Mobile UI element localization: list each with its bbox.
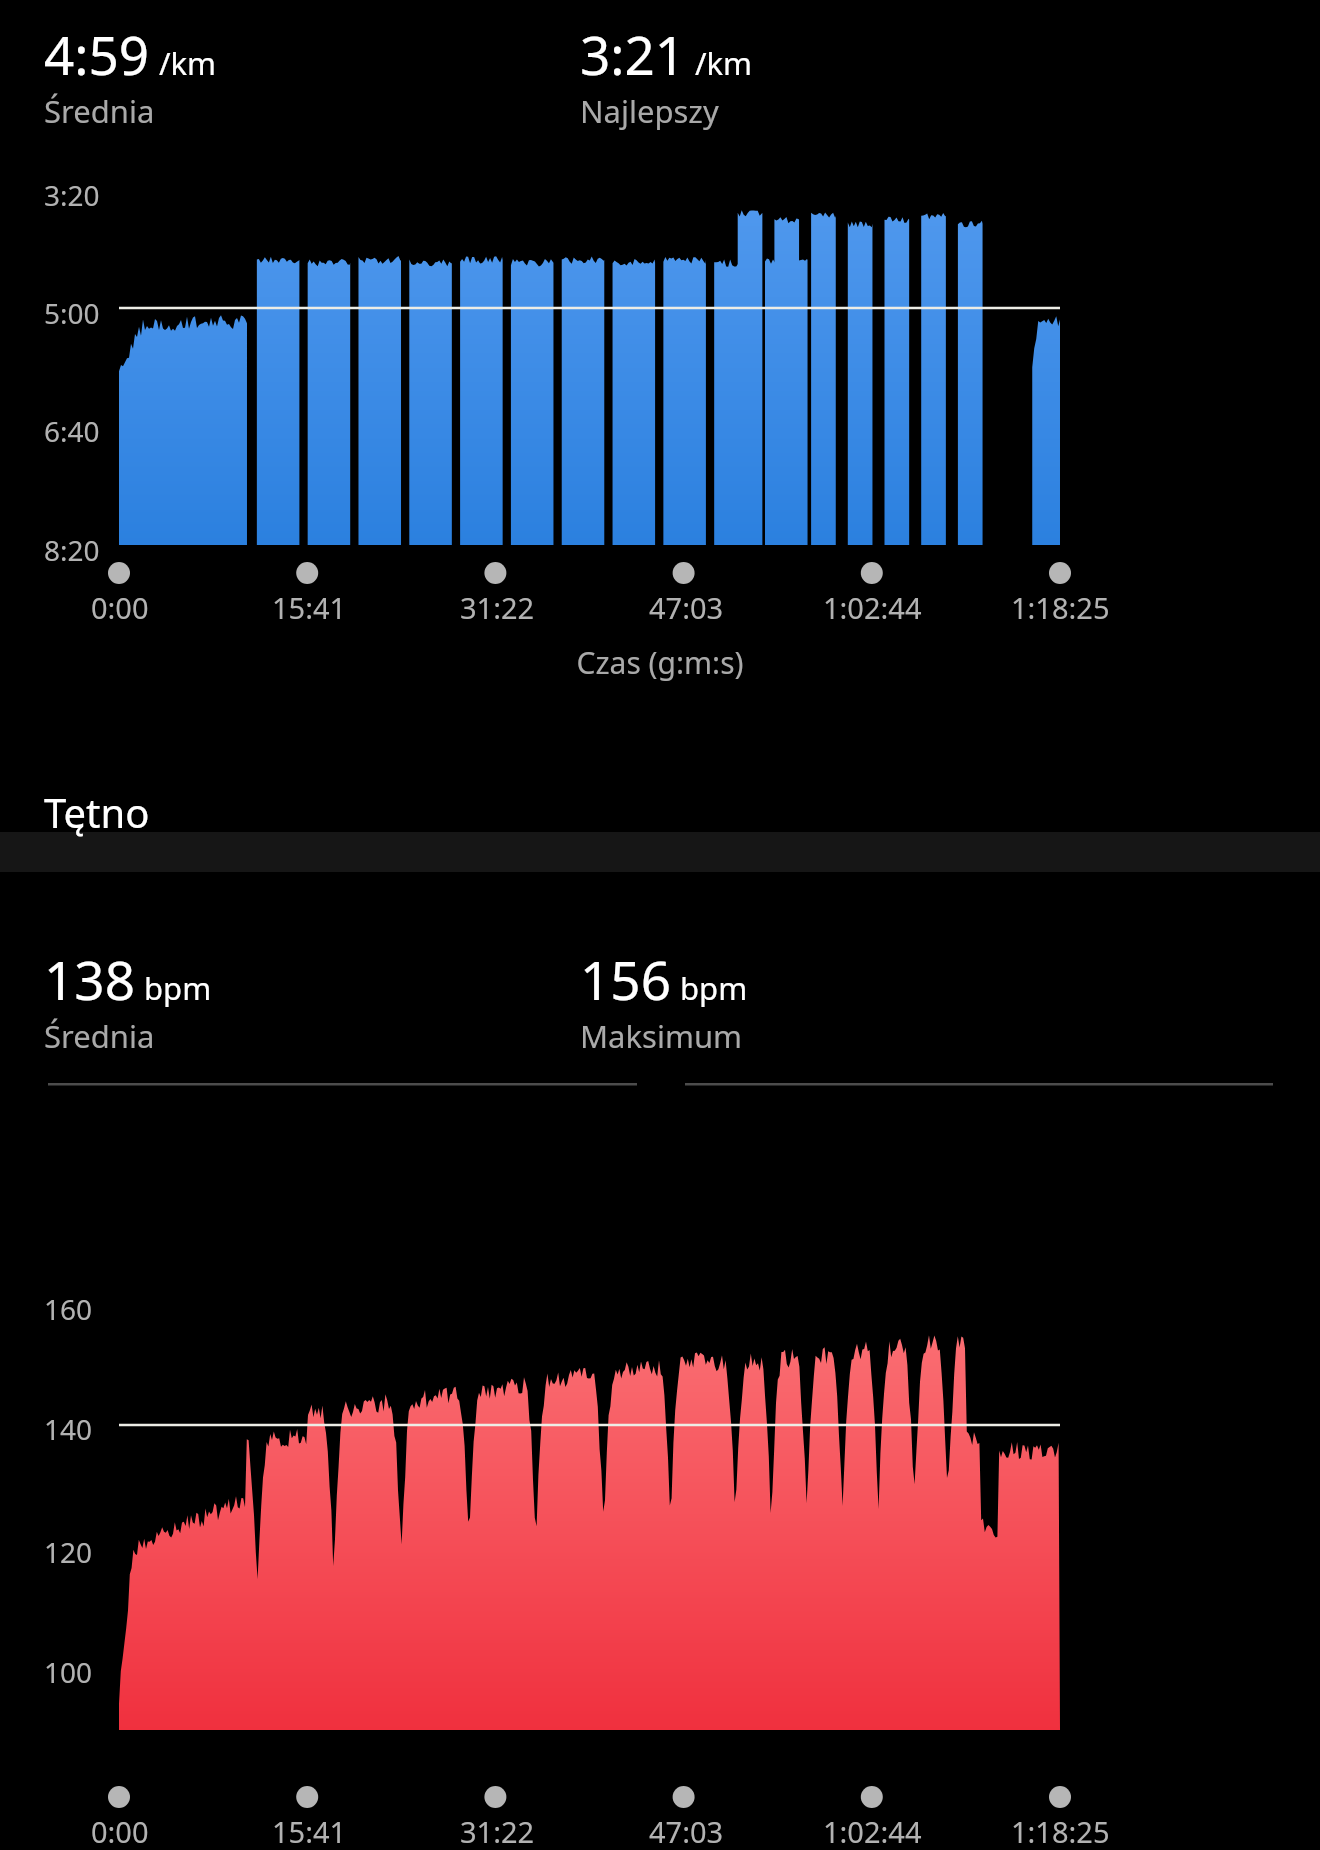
staticText: 1:18:25	[1011, 1812, 1110, 1850]
staticText: Średnia	[44, 1015, 155, 1057]
staticText: 31:22	[460, 588, 535, 627]
staticText: 100	[44, 1653, 93, 1691]
staticText: /km	[159, 42, 217, 84]
staticText: 156	[580, 943, 671, 1015]
staticText: 4:59	[44, 18, 150, 90]
staticText: 0:00	[91, 1812, 149, 1850]
staticText: 160	[44, 1290, 93, 1328]
staticText: 0:00	[91, 588, 149, 627]
button[interactable]: Tętno	[44, 785, 150, 839]
button[interactable]: 4:59	[0, 0, 1320, 1850]
staticText: 6:40	[44, 412, 100, 450]
staticText: 1:02:44	[823, 588, 922, 627]
staticText: 8:20	[44, 531, 100, 569]
staticText: Średnia	[44, 90, 155, 132]
staticText: Najlepszy	[580, 90, 719, 132]
button[interactable]: 156	[580, 943, 748, 1057]
staticText: 3:21	[580, 18, 686, 90]
button[interactable]: 138	[44, 943, 212, 1057]
staticText: 138	[44, 943, 135, 1015]
staticText: 47:03	[649, 1812, 724, 1850]
staticText: bpm	[680, 967, 748, 1009]
staticText: 15:41	[272, 588, 347, 627]
staticText: 3:20	[44, 176, 100, 214]
staticText: 47:03	[649, 588, 724, 627]
staticText: /km	[695, 42, 753, 84]
staticText: 1:02:44	[823, 1812, 922, 1850]
staticText: 140	[44, 1410, 93, 1448]
button[interactable]: 3:21	[580, 18, 753, 132]
staticText: Czas (g:m:s)	[0, 642, 1320, 683]
staticText: 1:18:25	[1011, 588, 1110, 627]
staticText: Maksimum	[580, 1015, 743, 1057]
staticText: 15:41	[272, 1812, 347, 1850]
staticText: bpm	[144, 967, 212, 1009]
staticText: 120	[44, 1533, 93, 1571]
button[interactable]: 4:59	[44, 18, 217, 132]
staticText: 5:00	[44, 294, 100, 332]
staticText: 31:22	[460, 1812, 535, 1850]
